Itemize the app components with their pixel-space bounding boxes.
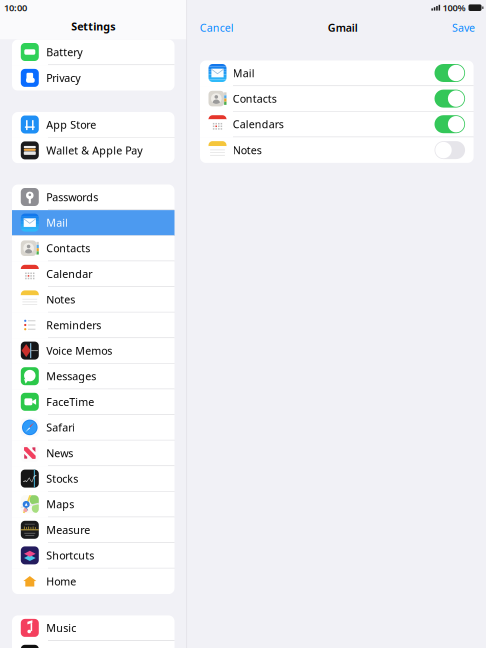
staticText: FaceTime — [46, 395, 94, 409]
staticText: Notes — [233, 143, 262, 157]
staticText: Mail — [46, 215, 68, 230]
button[interactable]: Calendars — [200, 112, 474, 137]
button[interactable]: Maps — [12, 492, 174, 517]
staticText: Privacy — [46, 71, 80, 85]
button[interactable]: Reminders — [12, 312, 174, 338]
staticText: Mail — [233, 66, 255, 80]
button[interactable]: Contacts — [200, 86, 474, 112]
staticText: Reminders — [46, 318, 101, 332]
staticText: App Store — [46, 117, 96, 132]
staticText: Shortcuts — [46, 548, 94, 562]
staticText: Gmail — [328, 20, 358, 35]
button[interactable]: Passwords — [12, 184, 174, 210]
staticText: Battery — [46, 45, 82, 59]
button[interactable]: tv — [12, 641, 174, 648]
staticText: Measure — [46, 523, 90, 537]
button[interactable]: Notes — [200, 137, 474, 163]
button[interactable]: Calendar — [12, 261, 174, 287]
staticText: Passwords — [46, 190, 98, 204]
button[interactable]: Safari — [12, 415, 174, 440]
staticText: Contacts — [46, 241, 90, 255]
button[interactable]: App Store — [12, 112, 174, 138]
button[interactable]: Messages — [12, 364, 174, 389]
staticText: Notes — [46, 292, 75, 306]
staticText: Safari — [46, 420, 75, 434]
button[interactable]: Cancel — [200, 20, 234, 35]
staticText: Contacts — [233, 91, 277, 106]
staticText: Home — [46, 574, 76, 588]
button[interactable]: Voice Memos — [12, 338, 174, 364]
staticText: Maps — [46, 497, 74, 511]
button[interactable]: Mail — [200, 60, 474, 86]
staticText: 10:00 — [4, 1, 27, 14]
button[interactable]: Save — [452, 20, 475, 35]
button[interactable]: Measure — [12, 517, 174, 543]
button[interactable]: Privacy — [12, 65, 174, 91]
staticText: Cancel — [200, 20, 234, 35]
button[interactable]: FaceTime — [12, 389, 174, 415]
button[interactable]: Wallet & Apple Pay — [12, 138, 174, 163]
staticText: Save — [452, 20, 475, 35]
staticText: 100% — [442, 1, 465, 14]
staticText: Wallet & Apple Pay — [46, 143, 142, 157]
staticText: Stocks — [46, 471, 78, 486]
button[interactable]: Mail — [12, 210, 174, 236]
button[interactable]: Battery — [12, 39, 174, 65]
staticText: Calendar — [46, 267, 92, 281]
button[interactable]: Contacts — [12, 236, 174, 261]
button[interactable]: Shortcuts — [12, 543, 174, 568]
staticText: Voice Memos — [46, 343, 112, 358]
button[interactable]: Stocks — [12, 466, 174, 492]
staticText: Messages — [46, 369, 96, 383]
staticText: Calendars — [233, 117, 284, 131]
button[interactable]: Notes — [12, 287, 174, 312]
staticText: Music — [46, 621, 76, 635]
staticText: News — [46, 446, 73, 460]
button[interactable]: Music — [12, 615, 174, 641]
staticText: Settings — [71, 19, 115, 33]
button[interactable]: News — [12, 440, 174, 466]
button[interactable]: Home — [12, 568, 174, 594]
